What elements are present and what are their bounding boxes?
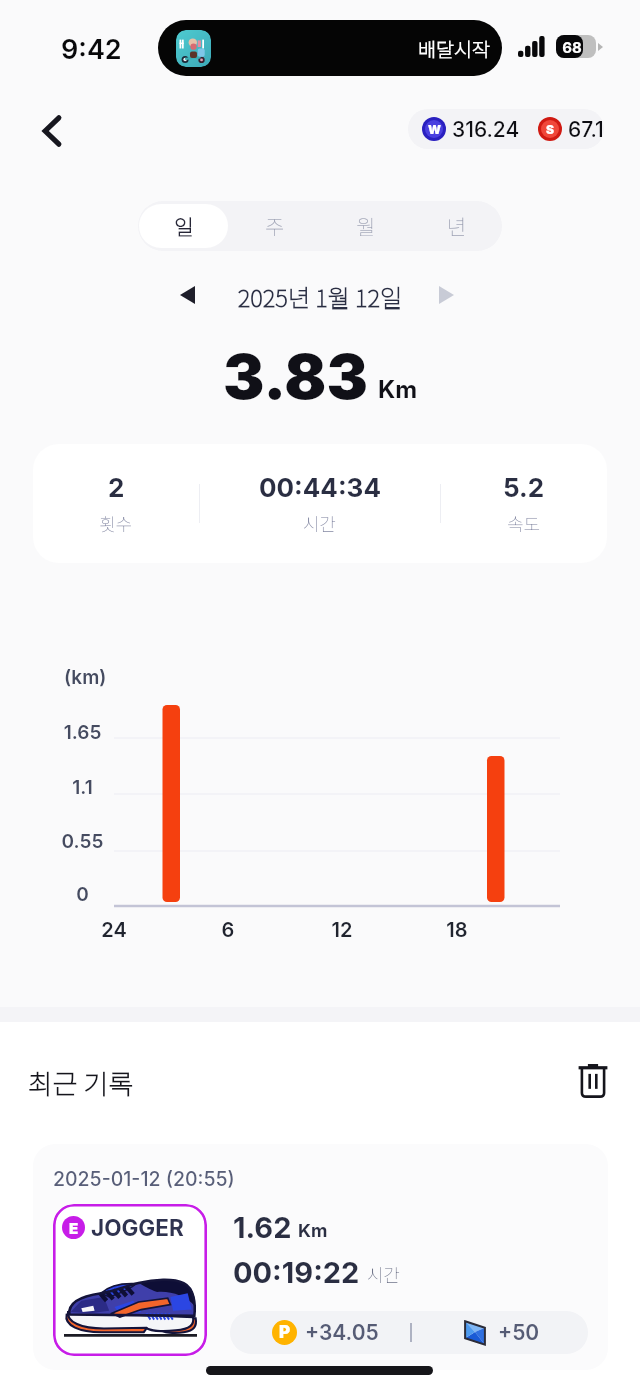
- staticText: 주: [265, 211, 285, 241]
- staticText: E: [69, 1219, 79, 1237]
- staticText: 68: [556, 38, 588, 58]
- staticText: 배달시작: [418, 34, 490, 62]
- staticText: Km: [298, 1220, 328, 1242]
- staticText: 00:19:22: [233, 1255, 360, 1290]
- staticText: 12: [312, 918, 372, 942]
- staticText: 0: [22, 883, 143, 906]
- staticText: Km: [378, 375, 418, 404]
- staticText: 0.55: [22, 830, 143, 853]
- staticText: 월: [356, 211, 376, 241]
- button[interactable]: 2025-01-12 (20:55): [33, 1144, 608, 1370]
- staticText: 1.65: [22, 721, 143, 744]
- staticText: 년: [447, 211, 467, 241]
- staticText: +34.05: [305, 1320, 379, 1345]
- staticText: +50: [498, 1320, 540, 1345]
- button[interactable]: 월: [323, 204, 408, 248]
- staticText: 67.1: [568, 117, 604, 142]
- staticText: S: [546, 122, 554, 137]
- staticText: 00:44:34: [259, 472, 381, 503]
- button[interactable]: Previous day: [164, 272, 210, 318]
- button[interactable]: Back: [28, 107, 76, 155]
- staticText: P: [279, 1322, 291, 1343]
- staticText: 24: [84, 918, 144, 942]
- staticText: 1.1: [22, 776, 143, 799]
- staticText: 316.24: [452, 117, 520, 142]
- button[interactable]: Delete records: [571, 1058, 615, 1102]
- staticText: 속도: [507, 510, 541, 536]
- staticText: W: [428, 122, 441, 137]
- button[interactable]: 일: [139, 204, 228, 248]
- button[interactable]: Next day: [423, 272, 469, 318]
- staticText: 2: [108, 472, 125, 503]
- staticText: 횟수: [99, 510, 133, 536]
- button[interactable]: 주: [232, 204, 317, 248]
- staticText: 1.62: [233, 1210, 292, 1245]
- button[interactable]: 년: [414, 204, 499, 248]
- staticText: 최근 기록: [28, 1063, 134, 1102]
- button[interactable]: W: [408, 109, 604, 149]
- staticText: 6: [198, 918, 258, 942]
- button[interactable]: P: [230, 1311, 588, 1354]
- staticText: (km): [64, 666, 107, 689]
- staticText: 2025년 1월 12일: [220, 279, 420, 314]
- staticText: 9:42: [61, 33, 122, 66]
- staticText: 일: [174, 211, 194, 241]
- staticText: 18: [427, 918, 487, 942]
- staticText: 2025-01-12 (20:55): [53, 1167, 235, 1191]
- staticText: 3.83: [223, 339, 368, 414]
- staticText: 시간: [303, 510, 337, 536]
- staticText: JOGGER: [91, 1214, 184, 1241]
- staticText: 5.2: [503, 472, 545, 503]
- staticText: 시간: [367, 1261, 401, 1287]
